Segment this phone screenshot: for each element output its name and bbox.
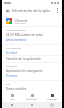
button[interactable]: Inicio [22,102,42,108]
staticText: 56,09 MB usados en total [6,33,43,37]
staticText: Chrome [15,18,28,22]
staticText: Desinstalar [26,98,38,101]
staticText: Permisos [6,64,17,67]
button[interactable]: Desinstalar [22,93,42,102]
button[interactable]: Sin datos [2,50,62,55]
button[interactable]: Atrás [4,7,11,14]
button[interactable]: Más opciones [54,7,60,13]
staticText: Almacenamiento [6,28,26,31]
button[interactable]: Forzar det. [42,93,62,102]
staticText: Uso de datos [6,46,22,49]
staticText: Uso [6,82,11,85]
button[interactable]: Tamaño de la aplicación [2,56,62,62]
button[interactable]: Atrás [2,102,22,108]
button[interactable]: Chrome [2,15,62,26]
button[interactable]: Aplicación de navegación [2,68,62,80]
button[interactable]: 56,09 MB usados en total [2,32,62,44]
button[interactable]: Recientes [42,102,62,108]
button[interactable]: Abrir [2,93,22,102]
staticText: Información de la aplicación [12,8,54,13]
staticText: Tamaño de la aplicación [6,57,41,61]
staticText: Datos móviles [6,87,27,91]
staticText: Abrir [10,98,15,101]
staticText: Forzar det. [47,98,58,101]
staticText: Aplicación de navegación [6,69,43,73]
staticText: Permisos [6,74,18,78]
button[interactable]: Datos móviles [2,86,62,93]
staticText: Sin datos [6,51,18,55]
staticText: Almacenamiento [6,38,27,42]
